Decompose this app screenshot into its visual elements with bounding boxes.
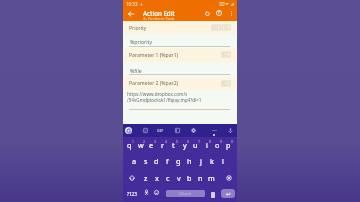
staticText: Priority [129, 25, 147, 32]
button[interactable]: 0 [223, 137, 234, 153]
staticText: q [127, 140, 132, 150]
button[interactable]: More options [225, 7, 237, 19]
staticText: 1 [132, 139, 134, 144]
staticText: g [176, 156, 181, 166]
staticText: y [183, 140, 187, 150]
button[interactable]: Google [125, 127, 132, 134]
staticText: k [210, 156, 214, 166]
button[interactable]: m [206, 170, 217, 186]
button[interactable]: Label [222, 81, 230, 86]
staticText: j [200, 156, 202, 166]
button[interactable]: Variables [222, 25, 230, 30]
button[interactable]: Priority [123, 21, 237, 34]
button[interactable]: v [173, 170, 184, 186]
button[interactable]: a [129, 153, 140, 169]
button[interactable]: z [140, 170, 151, 186]
staticText: %priority [130, 38, 153, 45]
button[interactable]: Stickers [140, 124, 150, 137]
button[interactable]: More [209, 124, 219, 137]
button[interactable]: n [195, 170, 206, 186]
button[interactable]: 9 [212, 137, 223, 153]
button[interactable]: Parameter 1 (%par1) [123, 48, 237, 62]
button[interactable]: Language [140, 186, 152, 198]
staticText: 4 [165, 139, 167, 144]
button[interactable]: Parameter 2 (%par2) [123, 77, 237, 90]
button[interactable]: ?123 [124, 186, 139, 202]
staticText: 5 [176, 139, 178, 144]
staticText: ?123 [127, 191, 137, 197]
button[interactable]: h [184, 153, 195, 169]
staticText: p [226, 140, 231, 150]
staticText: d [154, 156, 159, 166]
button[interactable]: j [195, 153, 206, 169]
staticText: v [177, 173, 181, 183]
staticText: 2 [143, 139, 145, 144]
staticText: 8 [209, 139, 211, 144]
staticText: t [172, 140, 175, 150]
button[interactable]: g [173, 153, 184, 169]
button[interactable]: Shift [123, 170, 140, 186]
button[interactable]: Undo [201, 7, 213, 19]
staticText: w [138, 140, 144, 150]
staticText: b [187, 173, 192, 183]
staticText: 0 [231, 139, 233, 144]
button[interactable]: Settings [188, 124, 198, 137]
staticText: 6 [187, 139, 189, 144]
staticText: l [222, 156, 224, 166]
button[interactable]: k [206, 153, 217, 169]
button[interactable]: d [151, 153, 162, 169]
button[interactable]: Period [211, 192, 215, 198]
staticText: 3: Perform Task [143, 15, 175, 21]
staticText: h [187, 156, 192, 166]
staticText: GIF [157, 128, 164, 133]
staticText: r [161, 140, 164, 150]
staticText: Parameter 1 (%par1) [129, 52, 179, 59]
button[interactable]: 8 [201, 137, 212, 153]
button[interactable]: Clipboard [172, 124, 182, 137]
staticText: u [193, 140, 198, 150]
staticText: 7 [198, 139, 200, 144]
staticText: /54vGmdptocksk1/flipay.mp4?dl=1 [127, 97, 202, 103]
staticText: %file [130, 67, 142, 74]
staticText: 9 [220, 139, 222, 144]
button[interactable]: Voice input [225, 124, 235, 137]
staticText: f [166, 156, 169, 166]
staticText: m [208, 173, 215, 183]
button[interactable]: x [151, 170, 162, 186]
staticText: x [155, 173, 159, 183]
button[interactable]: b [184, 170, 195, 186]
staticText: c [166, 173, 170, 183]
button[interactable]: Help [213, 7, 225, 19]
button[interactable]: Enter [221, 189, 235, 198]
staticText: i [206, 140, 208, 150]
button[interactable]: GIF [155, 124, 165, 137]
staticText: o [215, 140, 220, 150]
button[interactable]: Label [212, 25, 220, 30]
staticText: n [198, 173, 203, 183]
button[interactable]: 1 [124, 137, 135, 153]
button[interactable]: 6 [179, 137, 190, 153]
button[interactable]: Label [222, 52, 230, 57]
button[interactable]: 7 [190, 137, 201, 153]
button[interactable]: Space [166, 190, 205, 197]
button[interactable]: c [162, 170, 173, 186]
button[interactable]: 3 [146, 137, 157, 153]
staticText: Action Edit [143, 9, 175, 17]
button[interactable]: Backspace [221, 170, 237, 186]
button[interactable]: 5 [168, 137, 179, 153]
staticText: Parameter 2 (%par2) [129, 80, 179, 87]
button[interactable]: 2 [135, 137, 146, 153]
staticText: e [149, 140, 154, 150]
button[interactable]: s [140, 153, 151, 169]
staticText: s [144, 156, 148, 166]
staticText: https://www.dropbox.com/s [127, 91, 188, 97]
staticText: a [132, 156, 137, 166]
button[interactable]: l [217, 153, 228, 169]
button[interactable]: Back [124, 7, 137, 20]
button[interactable]: Emoji [150, 186, 162, 198]
staticText: 10:33 [126, 1, 138, 7]
staticText: GBoard [179, 191, 192, 196]
staticText: ? [218, 10, 220, 16]
button[interactable]: f [162, 153, 173, 169]
button[interactable]: 4 [157, 137, 168, 153]
